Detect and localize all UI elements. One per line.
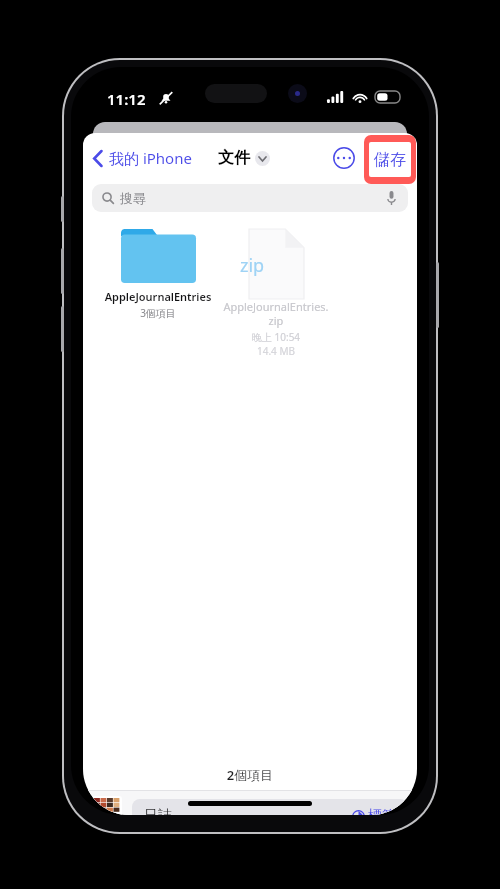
button[interactable]: AppleJournalEntries bbox=[103, 229, 213, 320]
staticText: 標籤 bbox=[368, 807, 396, 815]
button[interactable]: 儲存 bbox=[364, 135, 416, 184]
staticText: zip bbox=[240, 253, 265, 278]
staticText: 我的 iPhone bbox=[109, 148, 192, 168]
staticText: 日誌 bbox=[144, 807, 172, 815]
staticText: 2個項目 bbox=[83, 766, 417, 784]
staticText: 文件 bbox=[218, 148, 250, 168]
staticText: 搜尋 bbox=[120, 190, 146, 206]
button[interactable]: Document preview bbox=[92, 796, 122, 815]
button[interactable]: 搜尋 bbox=[92, 184, 408, 212]
staticText: 3個項目 bbox=[103, 306, 213, 320]
staticText: AppleJournalEntries bbox=[103, 289, 213, 304]
button[interactable]: 我的 iPhone bbox=[87, 142, 198, 174]
staticText: 14.4 MB bbox=[221, 344, 331, 358]
staticText: AppleJournalEntries.zip bbox=[221, 299, 331, 328]
staticText: 晚上 10:54 bbox=[221, 330, 331, 344]
button[interactable]: 日誌 bbox=[132, 799, 408, 815]
button[interactable]: AppleJournalEntries.zip bbox=[221, 229, 331, 358]
staticText: 儲存 bbox=[374, 150, 406, 170]
button[interactable]: More options bbox=[329, 143, 359, 173]
button[interactable]: 文件 bbox=[218, 148, 270, 168]
staticText: 11:12 bbox=[107, 89, 146, 109]
